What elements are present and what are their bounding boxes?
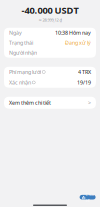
staticText: -40.000 USDT [21, 4, 78, 16]
staticText: Xác nhận [9, 79, 31, 86]
staticText: > [88, 99, 91, 106]
staticText: Chia sẻ [86, 192, 94, 202]
staticText: ≈ 28.999,12 ₫ [38, 17, 61, 23]
staticText: Ngày [9, 29, 22, 36]
staticText: Phí mạng lưới [9, 68, 41, 75]
staticText: 10:38 Hôm nay [55, 29, 91, 36]
staticText: 4 TRX [78, 68, 91, 75]
staticText: 19/19 [77, 79, 91, 86]
staticText: Xem thêm chi tiết [9, 99, 51, 106]
button[interactable]: Xem thêm chi tiết [0, 97, 100, 109]
staticText: Đang xử lý [65, 39, 91, 46]
button[interactable]: Chia sẻ [80, 195, 96, 199]
staticText: Người nhận [9, 49, 37, 56]
staticText: Trạng thái [9, 39, 33, 46]
